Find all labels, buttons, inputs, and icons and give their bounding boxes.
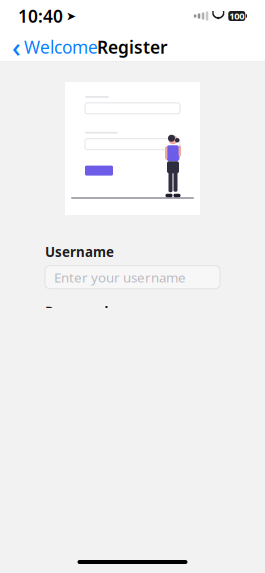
staticText: Password <box>45 303 108 320</box>
staticText: 10:40 <box>18 4 63 27</box>
staticText: ‹ <box>12 29 21 65</box>
button[interactable]: Enter your username <box>45 266 220 289</box>
staticText: ➤ <box>66 9 76 23</box>
staticText: 100 <box>229 10 244 22</box>
staticText: Username <box>45 243 114 261</box>
staticText: Welcome <box>24 35 98 58</box>
staticText: Register <box>97 35 168 58</box>
button[interactable]: ‹ <box>4 25 106 69</box>
staticText: Enter your username <box>54 268 186 286</box>
